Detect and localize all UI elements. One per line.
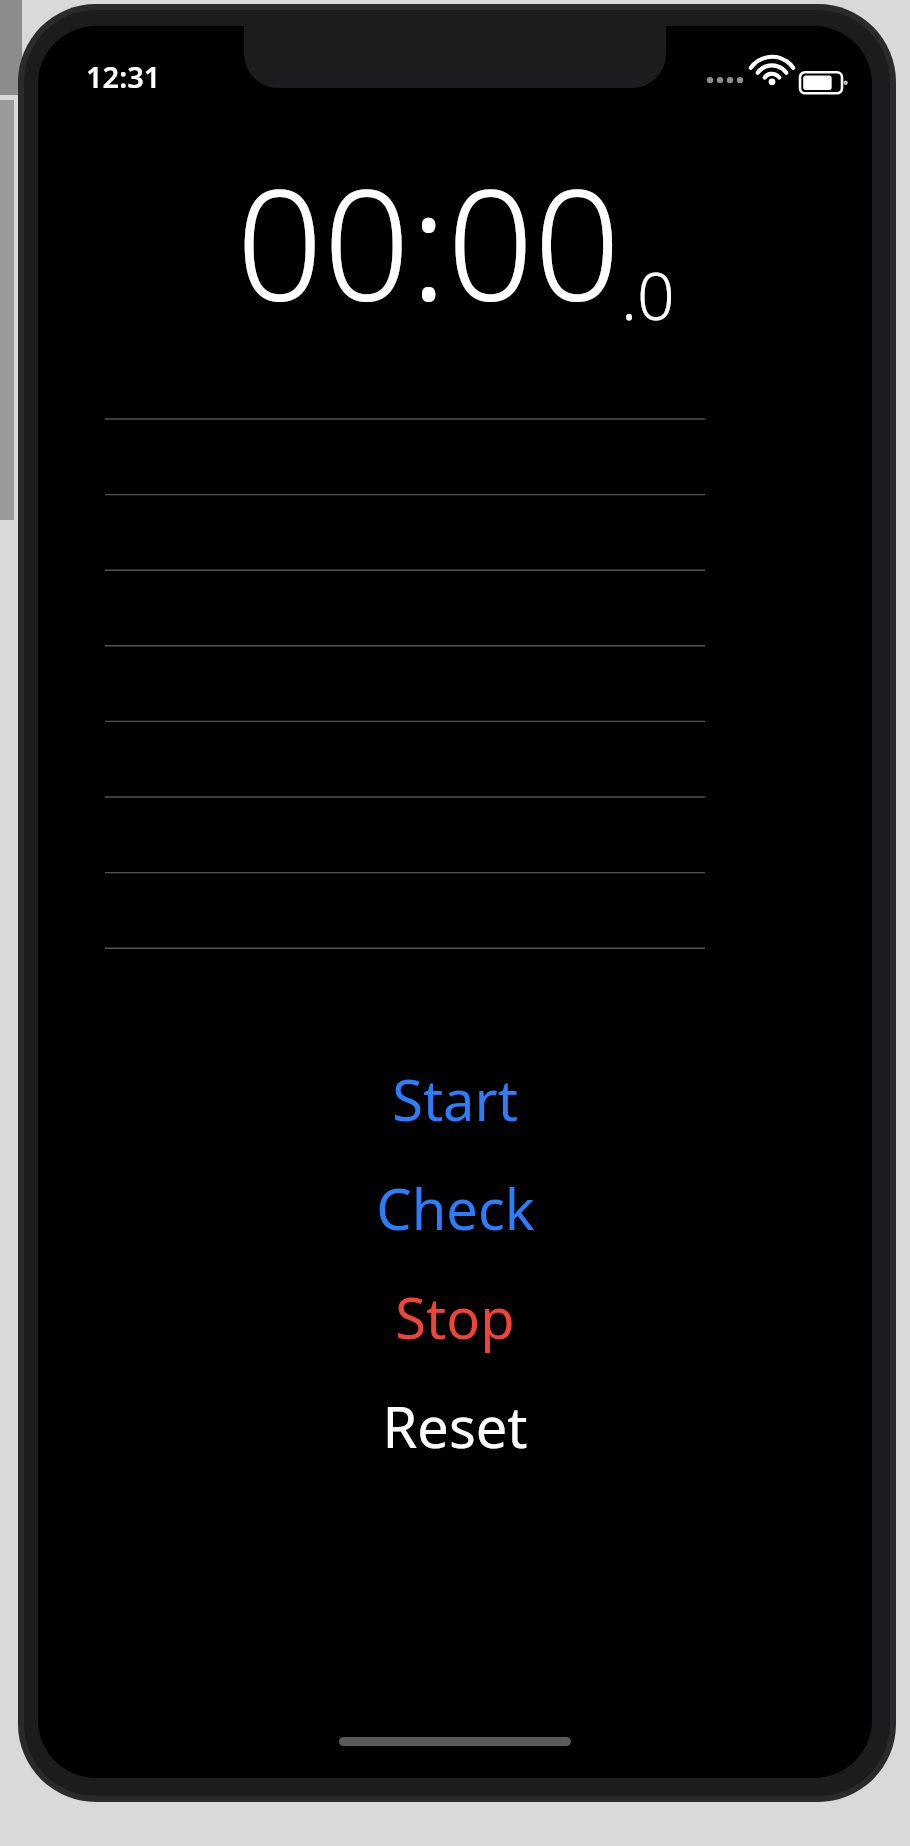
other: Home indicator <box>339 1737 571 1746</box>
staticText: Start <box>392 1061 518 1137</box>
button[interactable]: Reset <box>38 1371 872 1480</box>
staticText: Reset <box>382 1388 528 1464</box>
button[interactable]: Stop <box>38 1262 872 1371</box>
staticText: 12:31 <box>86 57 161 96</box>
button[interactable]: Start <box>38 1044 872 1153</box>
staticText: 00:00 <box>236 138 621 345</box>
button[interactable]: Check <box>38 1153 872 1262</box>
staticText: Stop <box>395 1279 515 1355</box>
staticText: Check <box>376 1170 535 1246</box>
staticText: .0 <box>621 249 675 339</box>
